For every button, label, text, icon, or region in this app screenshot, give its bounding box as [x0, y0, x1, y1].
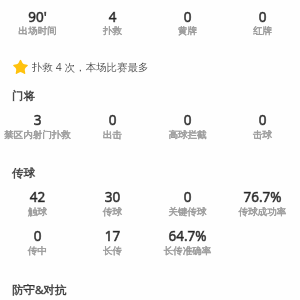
staticText: 触球	[0, 206, 75, 218]
staticText: 长传	[75, 245, 150, 257]
button[interactable]: 90'	[0, 8, 75, 37]
staticText: 30	[75, 188, 150, 206]
staticText: 30	[75, 188, 150, 206]
button[interactable]: 30	[75, 188, 150, 218]
staticText: 高球拦截	[150, 129, 225, 141]
staticText: 4	[75, 8, 150, 26]
staticText: 长传准确率	[150, 245, 225, 257]
staticText: 禁区内射门扑救	[0, 129, 75, 141]
button[interactable]: 64.7%	[150, 227, 225, 257]
staticText: 64.7%	[150, 227, 225, 245]
staticText: 传球	[75, 206, 150, 218]
staticText: 传球	[75, 206, 150, 218]
staticText: 触球	[0, 206, 75, 218]
staticText: 0	[225, 111, 300, 129]
staticText: 出场时间	[0, 25, 75, 37]
button[interactable]: 0	[150, 188, 225, 218]
staticText: 3	[0, 111, 75, 129]
staticText: 关键传球	[150, 206, 225, 218]
staticText: 76.7%	[225, 188, 300, 206]
staticText: 90'	[0, 8, 75, 26]
staticText: 红牌	[225, 25, 300, 37]
button[interactable]: 防守&对抗	[0, 282, 300, 298]
staticText: 传球	[12, 166, 35, 180]
button[interactable]: 3	[0, 111, 75, 141]
staticText: 击球	[225, 129, 300, 141]
staticText: 17	[75, 227, 150, 245]
staticText: 出场时间	[0, 25, 75, 37]
button[interactable]: 0	[0, 227, 75, 257]
staticText: 长传准确率	[150, 245, 225, 257]
staticText: 传中	[0, 245, 75, 257]
staticText: 0	[225, 111, 300, 129]
staticText: 76.7%	[225, 188, 300, 206]
button[interactable]: 42	[0, 188, 75, 218]
staticText: 传球成功率	[225, 206, 300, 218]
staticText: 0	[75, 111, 150, 129]
staticText: 防守&对抗	[12, 282, 67, 298]
staticText: 64.7%	[150, 227, 225, 245]
button[interactable]: 传球	[0, 166, 300, 182]
staticText: 红牌	[225, 25, 300, 37]
staticText: 黄牌	[150, 25, 225, 37]
staticText: 门将	[12, 89, 35, 103]
staticText: 4	[75, 8, 150, 26]
staticText: 出击	[75, 129, 150, 141]
staticText: 17	[75, 227, 150, 245]
staticText: 0	[150, 111, 225, 129]
staticText: 传中	[0, 245, 75, 257]
staticText: 关键传球	[150, 206, 225, 218]
staticText: 击球	[225, 129, 300, 141]
staticText: 0	[150, 8, 225, 26]
staticText: 传球成功率	[225, 206, 300, 218]
button[interactable]: 最佳表现	[0, 57, 300, 75]
staticText: 0	[0, 227, 75, 245]
staticText: 扑救	[75, 25, 150, 37]
button[interactable]: 0	[150, 111, 225, 141]
staticText: 0	[150, 8, 225, 26]
button[interactable]: 4	[75, 8, 150, 37]
staticText: 0	[0, 227, 75, 245]
staticText: 禁区内射门扑救	[0, 129, 75, 141]
button[interactable]: 0	[150, 8, 225, 37]
staticText: 高球拦截	[150, 129, 225, 141]
staticText: 扑救 4 次，本场比赛最多	[32, 60, 149, 74]
button[interactable]: 门将	[0, 89, 300, 105]
staticText: 42	[0, 188, 75, 206]
button[interactable]: 76.7%	[225, 188, 300, 218]
button[interactable]: 17	[75, 227, 150, 257]
staticText: 0	[150, 188, 225, 206]
staticText: 42	[0, 188, 75, 206]
staticText: 黄牌	[150, 25, 225, 37]
staticText: 0	[225, 8, 300, 26]
other: 最佳表现	[12, 59, 29, 76]
staticText: 3	[0, 111, 75, 129]
staticText: 0	[150, 188, 225, 206]
button[interactable]: 0	[225, 8, 300, 37]
button[interactable]: 0	[75, 111, 150, 141]
staticText: 门将	[12, 89, 35, 103]
staticText: 0	[225, 8, 300, 26]
staticText: 0	[150, 111, 225, 129]
staticText: 长传	[75, 245, 150, 257]
staticText: 出击	[75, 129, 150, 141]
staticText: 0	[75, 111, 150, 129]
button[interactable]: 0	[225, 111, 300, 141]
staticText: 扑救	[75, 25, 150, 37]
staticText: 90'	[0, 8, 75, 26]
staticText: 传球	[12, 166, 35, 180]
staticText: 防守&对抗	[12, 282, 67, 298]
